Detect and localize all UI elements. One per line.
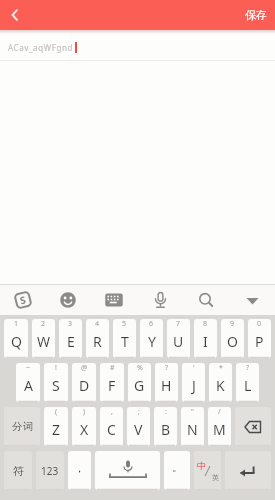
button[interactable]: 1 — [4, 319, 28, 358]
staticText: C — [107, 420, 116, 439]
button[interactable]: 保存 — [237, 2, 275, 28]
button[interactable]: 分词 — [4, 407, 40, 446]
staticText: ! — [55, 363, 57, 373]
staticText: 符 — [13, 464, 24, 478]
staticText: ( — [55, 407, 58, 417]
button[interactable]: 。 — [164, 451, 190, 490]
button[interactable]: 4 — [86, 319, 109, 358]
staticText: 1 — [14, 319, 19, 329]
staticText: ' — [193, 363, 195, 373]
staticText: R — [93, 332, 102, 351]
staticText: S — [52, 376, 60, 395]
staticText: 0 — [257, 319, 262, 329]
button[interactable]: % — [128, 363, 151, 402]
button[interactable]: ? — [155, 363, 178, 402]
staticText: * — [219, 363, 223, 373]
staticText: 9 — [230, 319, 235, 329]
staticText: X — [80, 420, 89, 439]
staticText: S — [18, 292, 28, 307]
button[interactable]: @ — [72, 363, 96, 402]
button[interactable]: ? — [236, 363, 259, 402]
button[interactable]: 6 — [140, 319, 163, 358]
staticText: ? — [246, 363, 250, 373]
button[interactable] — [225, 451, 271, 490]
button[interactable]: 7 — [167, 319, 190, 358]
staticText: U — [173, 332, 184, 351]
button[interactable]: ) — [72, 407, 96, 446]
button[interactable]: : — [154, 407, 177, 446]
button[interactable] — [45, 285, 91, 315]
staticText: T — [121, 332, 129, 351]
staticText: 中 — [197, 460, 206, 471]
button[interactable] — [95, 451, 160, 490]
button[interactable]: # — [100, 363, 124, 402]
button[interactable]: 9 — [221, 319, 244, 358]
staticText: F — [108, 376, 116, 395]
staticText: J — [192, 376, 196, 395]
staticText: Z — [52, 420, 61, 439]
button[interactable]: ; — [127, 407, 150, 446]
staticText: E — [67, 332, 75, 351]
button[interactable]: 中 — [194, 451, 221, 490]
staticText: D — [79, 376, 90, 395]
staticText: ~ — [26, 363, 31, 373]
staticText: L — [244, 376, 252, 395]
button[interactable] — [183, 285, 229, 315]
staticText: ? — [165, 363, 169, 373]
button[interactable]: , — [100, 407, 123, 446]
staticText: ) — [83, 407, 86, 417]
button[interactable]: 3 — [59, 319, 82, 358]
staticText: Q — [11, 332, 22, 351]
button[interactable]: " — [181, 407, 204, 446]
staticText: " — [191, 407, 194, 417]
button[interactable] — [91, 285, 137, 315]
button[interactable] — [137, 285, 183, 315]
staticText: 分词 — [12, 420, 33, 433]
button[interactable] — [0, 0, 30, 30]
staticText: O — [227, 332, 238, 351]
staticText: / — [218, 407, 221, 417]
button[interactable]: ! — [44, 363, 68, 402]
button[interactable]: ' — [182, 363, 205, 402]
staticText: 8 — [203, 319, 208, 329]
staticText: M — [213, 420, 226, 439]
staticText: # — [110, 363, 115, 373]
staticText: N — [187, 420, 198, 439]
button[interactable]: 0 — [248, 319, 271, 358]
staticText: ， — [74, 461, 85, 475]
staticText: 保存 — [245, 8, 267, 22]
staticText: W — [37, 332, 51, 351]
staticText: 7 — [176, 319, 181, 329]
staticText: Y — [148, 332, 156, 351]
staticText: K — [216, 376, 225, 395]
staticText: ; — [138, 407, 140, 417]
button[interactable]: 5 — [113, 319, 136, 358]
staticText: I — [203, 332, 208, 351]
staticText: B — [161, 420, 171, 439]
button[interactable]: 123 — [36, 451, 64, 490]
staticText: : — [165, 407, 167, 417]
button[interactable] — [229, 285, 275, 315]
button[interactable]: 2 — [32, 319, 55, 358]
button[interactable]: 符 — [4, 451, 32, 490]
button[interactable]: S — [0, 285, 45, 315]
staticText: V — [134, 420, 143, 439]
staticText: % — [137, 363, 143, 373]
button[interactable]: 8 — [194, 319, 217, 358]
button[interactable] — [235, 407, 271, 446]
staticText: H — [161, 376, 172, 395]
button[interactable]: ， — [68, 451, 91, 490]
staticText: 5 — [122, 319, 127, 329]
staticText: G — [134, 376, 145, 395]
button[interactable]: / — [208, 407, 231, 446]
staticText: 6 — [149, 319, 154, 329]
staticText: P — [255, 332, 264, 351]
staticText: 123 — [41, 464, 59, 478]
button[interactable]: * — [209, 363, 232, 402]
staticText: A — [24, 376, 33, 395]
staticText: @ — [81, 363, 88, 373]
button[interactable]: ~ — [16, 363, 40, 402]
button[interactable]: ACav_aqWFgnd — [0, 34, 275, 60]
button[interactable]: ( — [44, 407, 68, 446]
staticText: , — [111, 407, 113, 417]
